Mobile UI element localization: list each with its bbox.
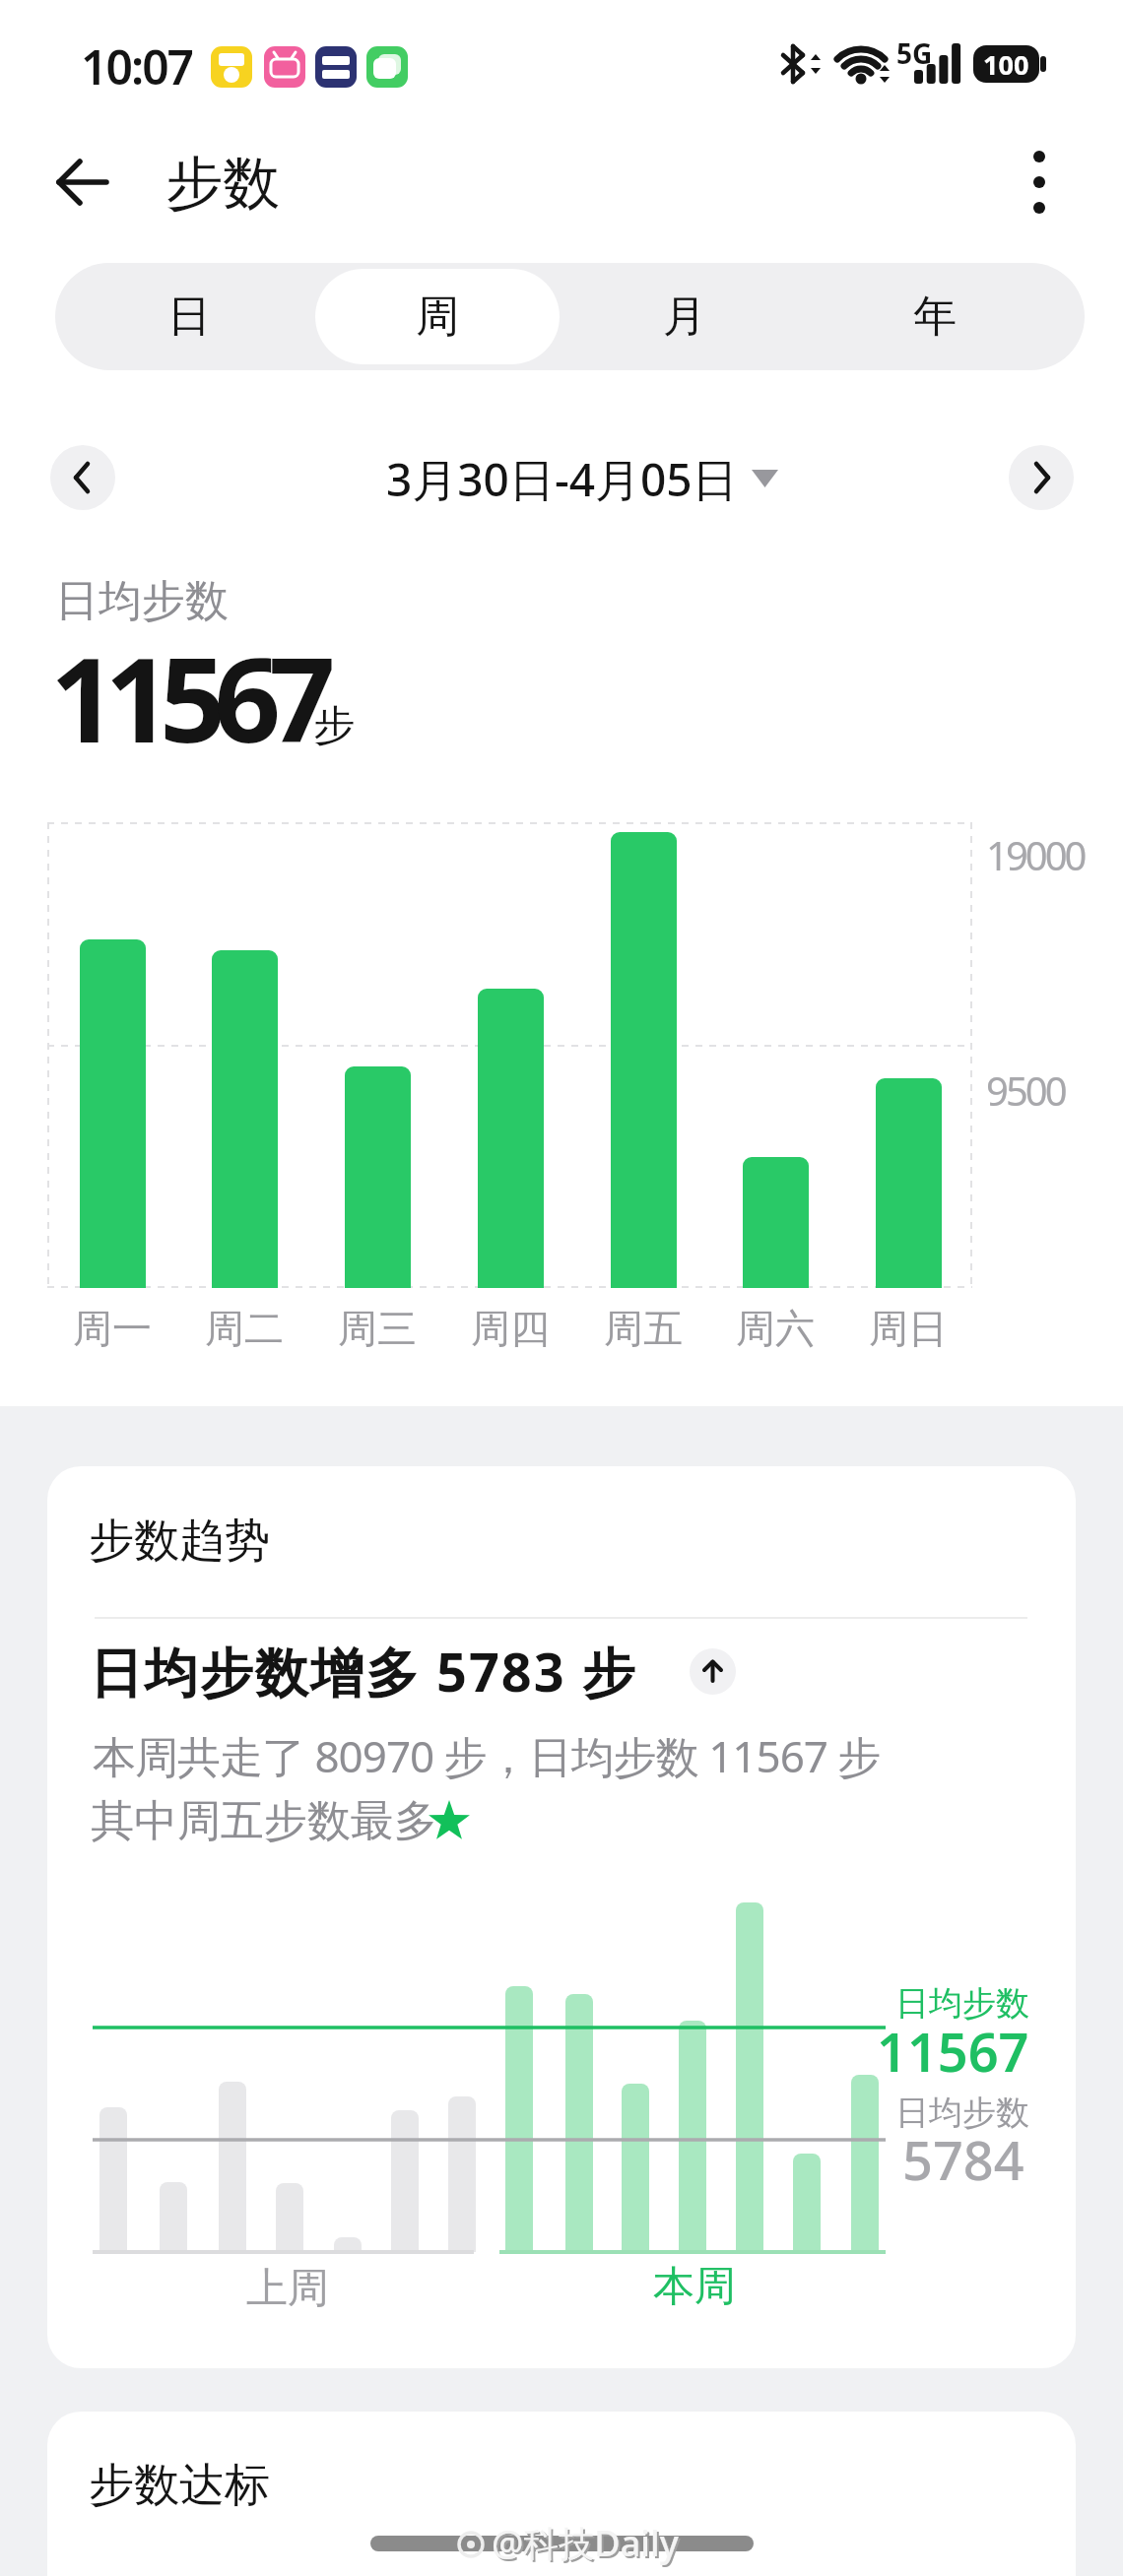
staticText: 11567 — [877, 2015, 1029, 2088]
staticText: 19000 — [986, 828, 1085, 881]
button[interactable] — [374, 438, 788, 517]
button[interactable] — [569, 263, 826, 370]
staticText: 周二 — [205, 1304, 284, 1353]
button[interactable] — [55, 263, 312, 370]
staticText: 周一 — [73, 1304, 152, 1353]
staticText: 上周 — [246, 2263, 329, 2315]
staticText: 其中周五步数最多 — [91, 1794, 437, 1848]
button[interactable] — [826, 263, 1084, 370]
staticText: 日均步数 — [55, 574, 229, 628]
button[interactable] — [312, 263, 569, 370]
staticText: 3月30日-4月05日 — [386, 448, 738, 510]
staticText: 5784 — [902, 2123, 1024, 2196]
staticText: 步数达标 — [89, 2457, 270, 2514]
staticText: 周四 — [471, 1304, 550, 1353]
staticText: 100 — [983, 46, 1029, 83]
staticText: 周五 — [604, 1304, 683, 1353]
button[interactable] — [1009, 445, 1074, 510]
staticText: @科技Daily — [492, 2519, 679, 2567]
staticText: 本周共走了 80970 步，日均步数 11567 步 — [93, 1726, 881, 1785]
button[interactable] — [47, 1466, 1076, 2368]
staticText: 年 — [913, 290, 957, 344]
staticText: 日均步数增多 5783 步 — [90, 1635, 637, 1707]
staticText: @科技Daily — [494, 2521, 681, 2569]
staticText: 10:07 — [81, 34, 193, 98]
staticText: 步数趋势 — [89, 1513, 270, 1570]
staticText: 月 — [663, 290, 706, 344]
staticText: 本周 — [653, 2261, 736, 2313]
staticText: 日 — [167, 290, 211, 344]
button[interactable] — [41, 141, 124, 224]
staticText: 5G — [896, 34, 933, 72]
staticText: 步数 — [165, 148, 280, 220]
button[interactable] — [50, 445, 115, 510]
staticText: 周三 — [338, 1304, 417, 1353]
staticText: 周 — [416, 290, 459, 344]
staticText: 周日 — [869, 1304, 948, 1353]
staticText: 11567 — [50, 618, 324, 777]
staticText: 日均步数 — [895, 1982, 1029, 2025]
button[interactable] — [47, 2412, 1076, 2576]
button[interactable] — [1005, 141, 1074, 224]
staticText: 日均步数 — [895, 2092, 1029, 2134]
staticText: 周六 — [736, 1304, 815, 1353]
staticText: 步 — [313, 700, 355, 752]
staticText: 9500 — [986, 1063, 1065, 1117]
